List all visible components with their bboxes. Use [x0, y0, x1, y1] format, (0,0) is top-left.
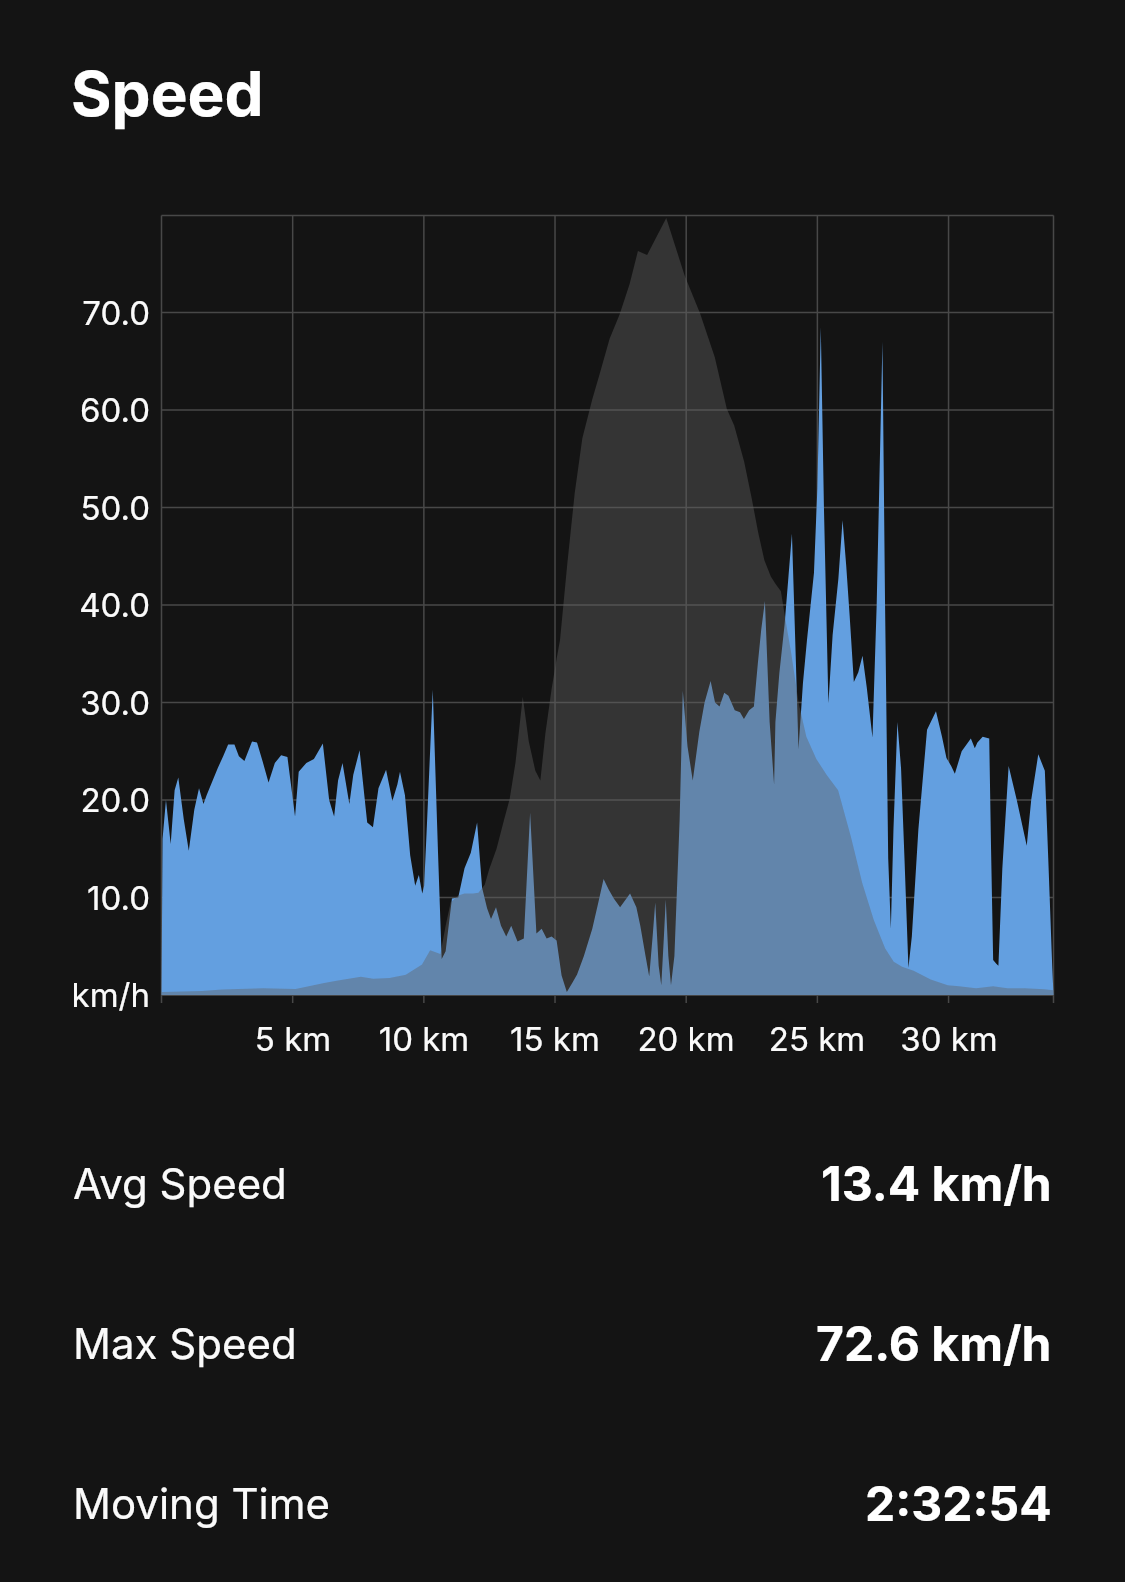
- staticText: 30 km: [839, 1019, 1059, 1059]
- staticText: 40.0: [0, 585, 150, 625]
- staticText: 30.0: [0, 683, 150, 723]
- staticText: 20 km: [576, 1019, 796, 1059]
- staticText: 25 km: [707, 1019, 927, 1059]
- staticText: Max Speed: [73, 1318, 297, 1369]
- staticText: 72.6 km/h: [816, 1314, 1052, 1372]
- staticText: 10.0: [0, 878, 150, 918]
- staticText: 2:32:54: [865, 1474, 1052, 1532]
- staticText: Moving Time: [73, 1478, 331, 1529]
- staticText: 5 km: [183, 1019, 403, 1059]
- staticText: 50.0: [0, 488, 150, 528]
- button[interactable]: Avg Speed: [0, 1103, 1125, 1263]
- button[interactable]: Max Speed: [0, 1263, 1125, 1423]
- staticText: 70.0: [0, 293, 150, 333]
- staticText: 13.4 km/h: [821, 1154, 1052, 1212]
- button[interactable]: Moving Time: [0, 1423, 1125, 1582]
- other: Speed over distance chart: [0, 0, 1125, 1582]
- staticText: 60.0: [0, 390, 150, 430]
- staticText: 20.0: [0, 780, 150, 820]
- staticText: Speed: [71, 56, 264, 131]
- staticText: Avg Speed: [73, 1158, 287, 1209]
- staticText: 10 km: [314, 1019, 534, 1059]
- staticText: 15 km: [445, 1019, 665, 1059]
- staticText: km/h: [0, 975, 150, 1015]
